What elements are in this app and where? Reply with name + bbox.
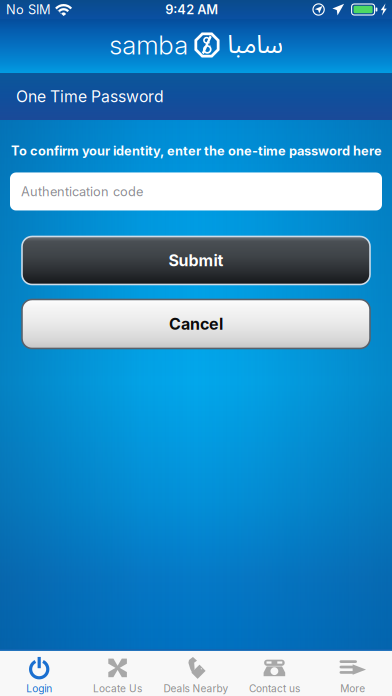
staticText: Cancel: [169, 314, 223, 334]
button[interactable]: Deals Nearby: [157, 650, 235, 696]
staticText: Authentication code: [21, 184, 143, 199]
staticText: Contact us: [249, 682, 300, 695]
button[interactable]: Locate Us: [78, 650, 157, 696]
staticText: More: [340, 682, 365, 695]
staticText: Locate Us: [93, 682, 142, 695]
button[interactable]: Contact us: [235, 650, 314, 696]
staticText: One Time Password: [16, 87, 164, 106]
staticText: Login: [26, 682, 52, 695]
staticText: 9:42 AM: [165, 2, 218, 17]
button[interactable]: Cancel: [22, 299, 370, 348]
staticText: Submit: [168, 251, 223, 270]
button[interactable]: Submit: [22, 236, 370, 284]
button[interactable]: Login: [0, 650, 78, 696]
staticText: No SIM: [6, 2, 51, 17]
staticText: To confirm your identity, enter the one-…: [11, 143, 382, 158]
staticText: samba: [109, 29, 188, 61]
staticText: Deals Nearby: [163, 682, 228, 695]
button[interactable]: More: [314, 650, 392, 696]
staticText: سامبا: [227, 18, 283, 72]
